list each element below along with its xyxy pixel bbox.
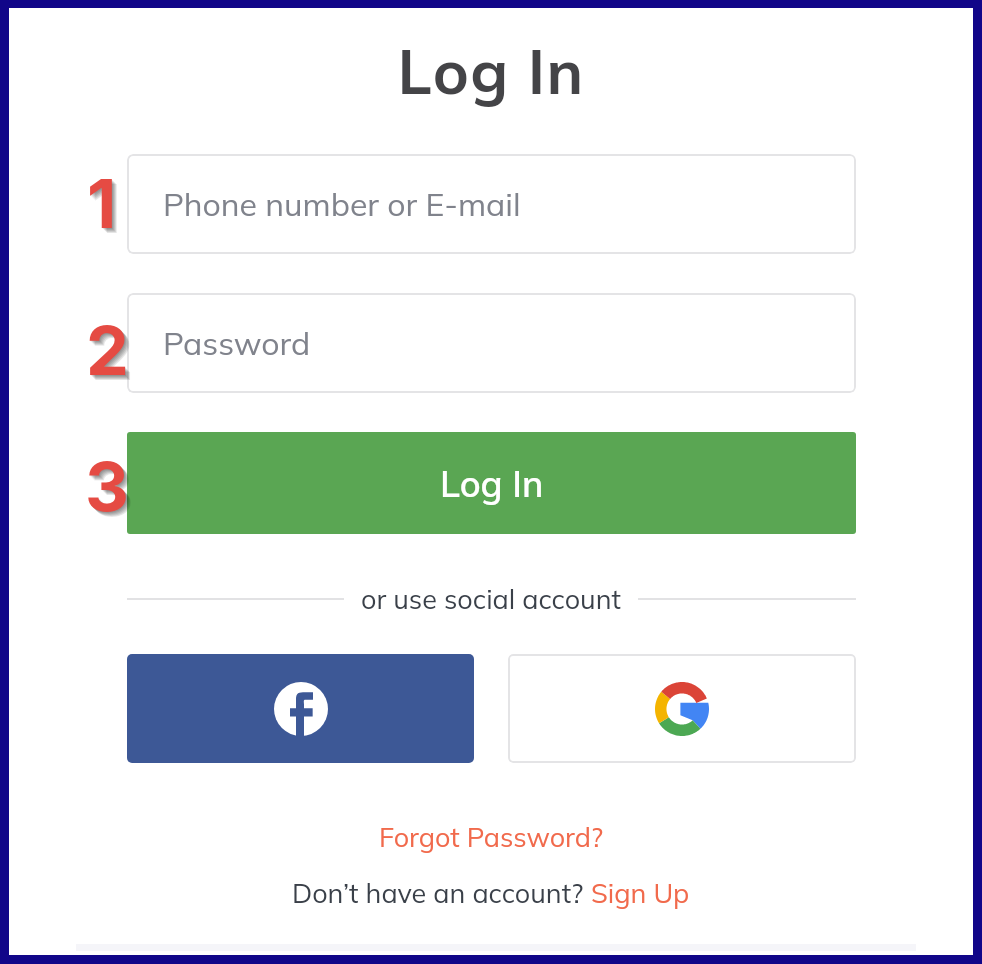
staticText: 2 [91, 314, 134, 394]
staticText: 3 [90, 450, 134, 530]
staticText: Sign Up [591, 876, 690, 910]
button[interactable]: Sign Up [591, 872, 690, 914]
staticText: 1 [88, 163, 118, 243]
staticText: Log In [440, 461, 544, 506]
button[interactable]: Forgot Password? [373, 816, 610, 858]
staticText: 1 [90, 165, 120, 245]
staticText: 1 [92, 167, 122, 247]
staticText: Password [163, 323, 311, 363]
button[interactable]: Phone number or E-mail [127, 154, 856, 254]
staticText: Log In [0, 33, 982, 110]
staticText: 1 [89, 164, 119, 244]
staticText: 2 [90, 313, 133, 393]
button[interactable]: Sign in with Google [508, 654, 856, 763]
staticText: 2 [89, 312, 132, 392]
staticText: 3 [88, 448, 132, 528]
button[interactable]: Sign in with Facebook [127, 654, 474, 763]
staticText: 1 [87, 162, 117, 242]
staticText: 2 [86, 309, 129, 389]
staticText: 3 [85, 445, 129, 525]
staticText: or use social account [361, 582, 621, 616]
button[interactable]: Password [127, 293, 856, 393]
staticText: 3 [86, 446, 130, 526]
staticText: 2 [88, 311, 131, 391]
staticText: Phone number or E-mail [163, 184, 521, 224]
staticText: 3 [87, 447, 131, 527]
staticText: 3 [89, 449, 133, 529]
button[interactable]: Log In [127, 432, 856, 534]
staticText: Don’t have an account? [292, 876, 591, 910]
staticText: Forgot Password? [379, 820, 604, 854]
staticText: 2 [87, 310, 130, 390]
staticText: 1 [91, 166, 121, 246]
